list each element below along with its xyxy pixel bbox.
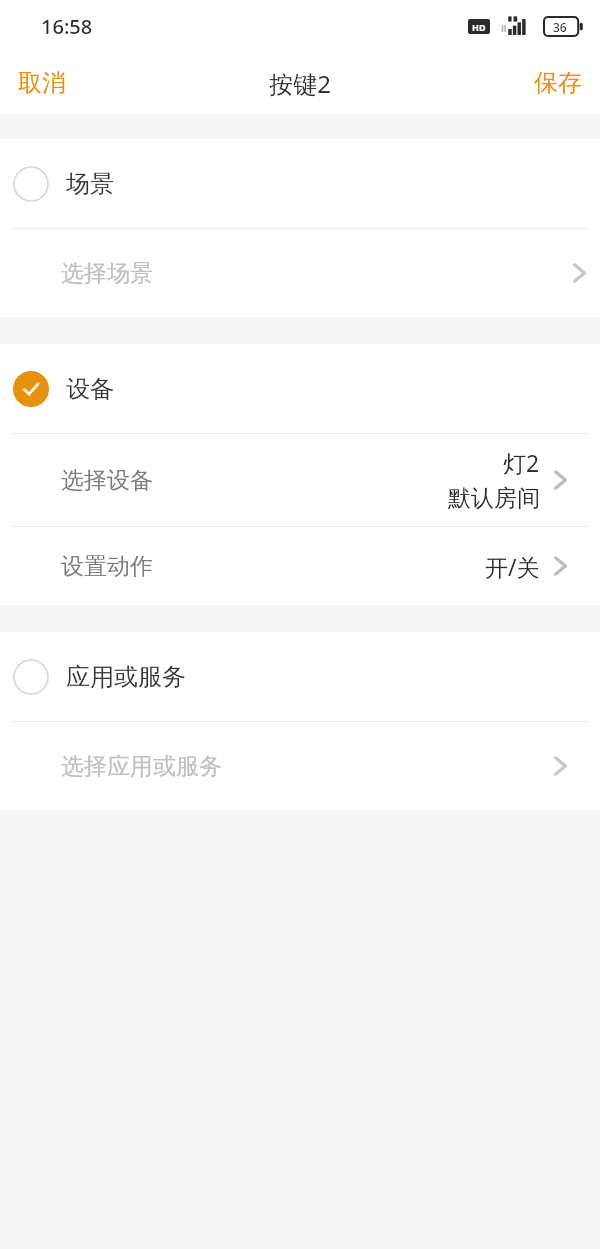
other: Open xyxy=(554,754,567,778)
staticText: 场景 xyxy=(66,169,114,199)
staticText: 默认房间 xyxy=(448,484,540,513)
staticText: 按键2 xyxy=(269,67,331,100)
staticText: 选择应用或服务 xyxy=(61,752,222,781)
button[interactable]: 选择应用或服务 xyxy=(0,722,600,810)
button[interactable]: 选择设备 xyxy=(0,434,600,526)
button[interactable]: 取消 xyxy=(0,58,84,108)
staticText: 取消 xyxy=(18,68,66,98)
other: Open xyxy=(573,261,586,285)
staticText: 36 xyxy=(553,19,567,35)
staticText: 设置动作 xyxy=(61,552,153,581)
staticText: 开/关 xyxy=(485,551,540,582)
staticText: 选择设备 xyxy=(61,466,153,495)
staticText: 选择场景 xyxy=(61,259,153,288)
button[interactable]: 应用或服务 xyxy=(0,632,600,721)
other: Open xyxy=(554,554,567,578)
staticText: 灯2 xyxy=(503,447,540,478)
other: Open xyxy=(554,468,567,492)
staticText: HD xyxy=(472,21,486,33)
staticText: 16:58 xyxy=(41,13,93,40)
button[interactable]: 场景 xyxy=(0,139,600,228)
button[interactable]: 设备 xyxy=(0,344,600,433)
staticText: 保存 xyxy=(534,68,582,98)
button[interactable]: 设置动作 xyxy=(0,527,600,605)
staticText: 应用或服务 xyxy=(66,662,186,692)
button[interactable]: 保存 xyxy=(516,58,600,108)
button[interactable]: 选择场景 xyxy=(0,229,600,317)
staticText: 设备 xyxy=(66,374,114,404)
